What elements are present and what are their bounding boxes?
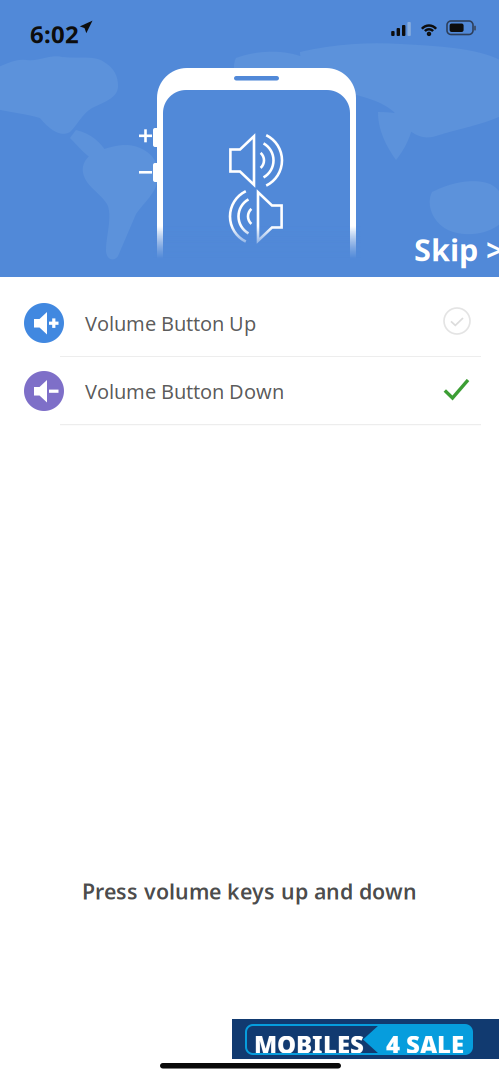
staticText: Skip > xyxy=(414,229,499,270)
staticText: Press volume keys up and down xyxy=(82,877,417,905)
staticText: Volume Button Up xyxy=(85,310,256,337)
staticText: Volume Button Down xyxy=(85,378,284,405)
button[interactable]: Volume Button Up xyxy=(0,289,499,357)
staticText: 6:02 xyxy=(30,18,79,50)
button[interactable]: Volume Button Down xyxy=(0,357,499,425)
staticText: 4 SALE xyxy=(386,1028,464,1060)
button[interactable]: Skip > xyxy=(400,220,499,279)
staticText: MOBILES xyxy=(254,1028,364,1060)
